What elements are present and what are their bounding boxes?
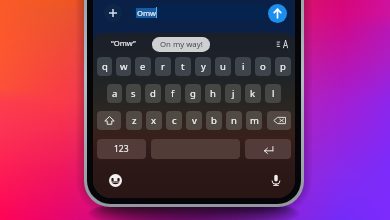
staticText: a — [112, 87, 118, 100]
staticText: p — [280, 60, 286, 73]
button[interactable]: b — [206, 111, 222, 130]
staticText: y — [201, 60, 206, 73]
staticText: On my way! — [160, 39, 203, 50]
staticText: w — [120, 60, 128, 73]
staticText: r — [161, 60, 165, 73]
staticText: x — [151, 114, 157, 127]
button[interactable]: n — [226, 111, 242, 130]
button[interactable]: g — [185, 84, 201, 103]
button[interactable]: l — [265, 84, 281, 103]
staticText: b — [211, 114, 217, 127]
button[interactable]: d — [145, 84, 161, 103]
staticText: f — [171, 87, 175, 100]
button[interactable]: z — [126, 111, 142, 130]
staticText: 123 — [114, 143, 129, 155]
button[interactable]: Dictation — [268, 172, 284, 188]
button[interactable]: Emoji keyboard — [107, 172, 123, 188]
button[interactable]: u — [215, 57, 231, 76]
staticText: n — [231, 114, 237, 127]
button[interactable]: r — [155, 57, 171, 76]
button[interactable]: “Omw” — [108, 36, 139, 50]
staticText: t — [181, 60, 185, 73]
button[interactable]: k — [245, 84, 261, 103]
button[interactable]: Send message — [268, 4, 287, 23]
button[interactable]: p — [275, 57, 291, 76]
button[interactable]: x — [146, 111, 162, 130]
button[interactable]: m — [246, 111, 262, 130]
button[interactable]: s — [126, 84, 141, 103]
button[interactable]: e — [135, 57, 151, 76]
button[interactable]: On my way! — [152, 37, 210, 52]
button[interactable]: v — [186, 111, 202, 130]
button[interactable]: a — [107, 84, 122, 103]
staticText: q — [102, 60, 108, 73]
staticText: e — [140, 60, 146, 73]
button[interactable]: j — [225, 84, 241, 103]
staticText: j — [232, 87, 235, 100]
button[interactable]: i — [235, 57, 251, 76]
button[interactable]: t — [175, 57, 191, 76]
staticText: d — [150, 87, 156, 100]
staticText: c — [172, 114, 177, 127]
button[interactable]: q — [97, 57, 112, 76]
staticText: z — [132, 114, 137, 127]
staticText: h — [210, 87, 216, 100]
staticText: u — [220, 60, 226, 73]
button[interactable]: f — [165, 84, 181, 103]
button[interactable]: w — [116, 57, 131, 76]
staticText: o — [260, 60, 266, 73]
button[interactable]: Text formatting — [275, 37, 289, 51]
button[interactable]: Backspace — [267, 111, 291, 130]
button[interactable]: Shift — [97, 111, 121, 130]
staticText: m — [250, 114, 259, 127]
button[interactable]: h — [205, 84, 221, 103]
button[interactable]: Omw — [129, 5, 267, 20]
button[interactable]: 123 — [97, 139, 146, 159]
button[interactable]: y — [195, 57, 211, 76]
button[interactable]: o — [255, 57, 271, 76]
staticText: v — [192, 114, 197, 127]
staticText: “Omw” — [111, 38, 136, 48]
staticText: l — [272, 87, 275, 100]
button[interactable]: Return — [245, 139, 291, 159]
staticText: Omw — [137, 8, 156, 18]
staticText: s — [131, 87, 136, 100]
button[interactable]: Add attachment — [104, 4, 122, 22]
button[interactable]: c — [166, 111, 182, 130]
staticText: k — [250, 87, 256, 100]
staticText: g — [190, 87, 196, 100]
staticText: i — [242, 60, 245, 73]
